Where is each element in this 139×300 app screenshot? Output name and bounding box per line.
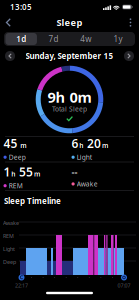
staticText: 7d [48, 34, 58, 44]
button[interactable]: 1y [102, 32, 134, 46]
staticText: Light [3, 245, 15, 253]
button[interactable]: 4w [70, 32, 102, 46]
staticText: Awake [77, 179, 98, 188]
staticText: h [79, 141, 83, 150]
button[interactable]: Previous day [5, 51, 15, 61]
staticText: m [18, 141, 26, 150]
staticText: 13:05 [10, 2, 32, 12]
staticText: Sunday, September 15 [25, 51, 113, 61]
staticText: 1 [3, 164, 10, 180]
staticText: Light [77, 153, 92, 162]
staticText: REM [3, 232, 14, 240]
staticText: Awake [3, 219, 19, 227]
staticText: Total Sleep [52, 105, 87, 113]
staticText: Deep [3, 258, 16, 266]
staticText: 1d [16, 34, 26, 44]
staticText: REM [9, 181, 23, 190]
button[interactable]: 7d [37, 32, 69, 46]
button[interactable]: 1d [5, 32, 37, 46]
staticText: 07:07 [117, 282, 130, 289]
button[interactable]: Next day [124, 51, 134, 61]
staticText: 22:17 [15, 282, 28, 289]
staticText: 55 [16, 164, 33, 180]
staticText: Deep [9, 153, 26, 162]
staticText: 9h 0m [47, 87, 91, 107]
staticText: -- [71, 166, 77, 178]
staticText: m [102, 141, 108, 150]
staticText: Sleep Timeline [4, 196, 61, 206]
staticText: h [11, 169, 15, 178]
button[interactable]: More options [123, 14, 137, 30]
button[interactable]: Back [0, 14, 16, 30]
staticText: m [34, 169, 40, 178]
staticText: 20 [84, 135, 101, 151]
staticText: Sleep [56, 16, 82, 29]
staticText: 45 [3, 135, 17, 151]
staticText: 6 [71, 135, 78, 151]
staticText: 4w [80, 34, 91, 44]
staticText: 1y [113, 34, 122, 44]
